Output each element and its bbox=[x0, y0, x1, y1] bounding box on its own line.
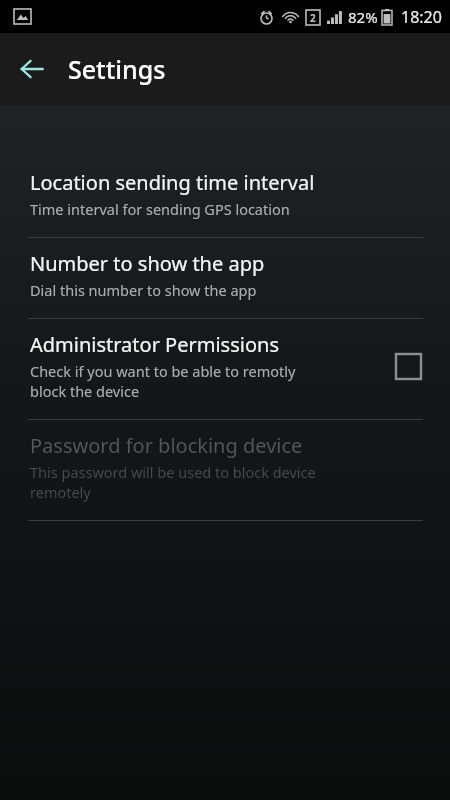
staticText: Dial this number to show the app bbox=[30, 280, 257, 300]
staticText: Settings bbox=[68, 52, 166, 86]
button[interactable]: Location sending time interval bbox=[0, 157, 450, 237]
staticText: This password will be used to block devi… bbox=[30, 462, 316, 502]
button[interactable]: Administrator Permissions bbox=[0, 319, 450, 419]
button[interactable]: Back bbox=[8, 45, 56, 93]
staticText: Location sending time interval bbox=[30, 169, 315, 196]
button[interactable]: Number to show the app bbox=[0, 238, 450, 318]
staticText: Administrator Permissions bbox=[30, 331, 279, 358]
staticText: 82% bbox=[348, 7, 378, 27]
staticText: Number to show the app bbox=[30, 250, 265, 277]
staticText: 2 bbox=[310, 11, 316, 25]
staticText: 18:20 bbox=[401, 6, 442, 28]
button[interactable]: Administrator Permissions checkbox bbox=[388, 346, 428, 386]
staticText: Check if you want to be able to remotly … bbox=[30, 361, 296, 401]
staticText: Time interval for sending GPS location bbox=[30, 199, 290, 219]
button: Password for blocking device bbox=[0, 420, 450, 520]
staticText: Password for blocking device bbox=[30, 432, 303, 459]
